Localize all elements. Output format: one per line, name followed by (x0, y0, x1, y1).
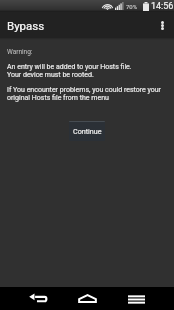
button[interactable]: More options (150, 12, 174, 38)
staticText: Warning: (7, 48, 33, 56)
button[interactable]: Home (63, 287, 111, 310)
staticText: An entry will be added to your Hosts fil… (7, 63, 132, 78)
staticText: 70% (126, 3, 138, 10)
staticText: 14:56 (151, 1, 174, 12)
button[interactable]: Back (14, 287, 62, 310)
button[interactable]: Continue (69, 121, 105, 141)
staticText: If You encounter problems, you could res… (7, 86, 161, 101)
button[interactable]: Recent apps (112, 287, 160, 310)
staticText: Bypass (7, 19, 45, 32)
staticText: Continue (73, 127, 102, 135)
